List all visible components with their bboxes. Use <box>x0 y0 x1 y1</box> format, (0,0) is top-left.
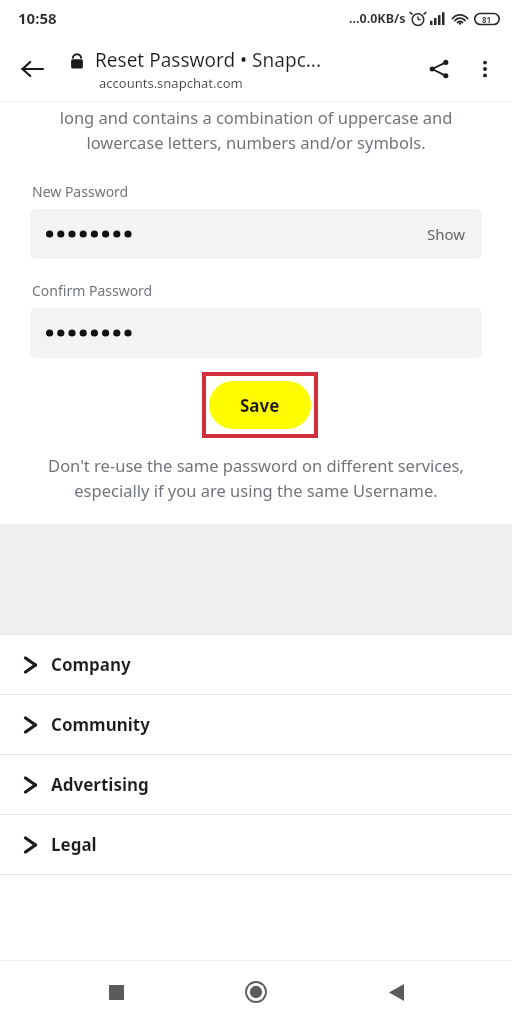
staticText: New Password <box>32 182 129 201</box>
staticText: 10:58 <box>18 8 57 28</box>
staticText: Save <box>240 394 280 417</box>
staticText: long and contains a combination of upper… <box>28 106 484 154</box>
button[interactable]: Company <box>0 635 512 694</box>
button[interactable]: Advertising <box>0 755 512 814</box>
button[interactable]: Show <box>411 209 482 259</box>
staticText: 81 <box>482 14 492 25</box>
staticText: Reset Password • Snapc... <box>95 47 322 73</box>
staticText: Show <box>427 224 466 244</box>
button[interactable]: Back <box>372 968 420 1016</box>
button[interactable]: More options <box>462 46 508 92</box>
staticText: Confirm Password <box>32 281 153 300</box>
button[interactable]: Save <box>209 381 311 429</box>
button[interactable]: Show <box>30 209 482 259</box>
staticText: Community <box>51 713 150 736</box>
button[interactable]: Home <box>232 968 280 1016</box>
staticText: ...0.0KB/s <box>349 10 406 27</box>
staticText: accounts.snapchat.com <box>99 74 243 92</box>
staticText: Legal <box>51 833 97 856</box>
staticText: Don't re-use the same password on differ… <box>32 454 480 502</box>
button[interactable]: Back <box>10 47 54 91</box>
staticText: Advertising <box>51 773 149 796</box>
staticText: Company <box>51 653 131 676</box>
button[interactable]: Legal <box>0 815 512 874</box>
button[interactable]: Share <box>416 46 462 92</box>
button[interactable]: Community <box>0 695 512 754</box>
button[interactable] <box>30 308 482 358</box>
button[interactable]: Recent apps <box>92 968 140 1016</box>
